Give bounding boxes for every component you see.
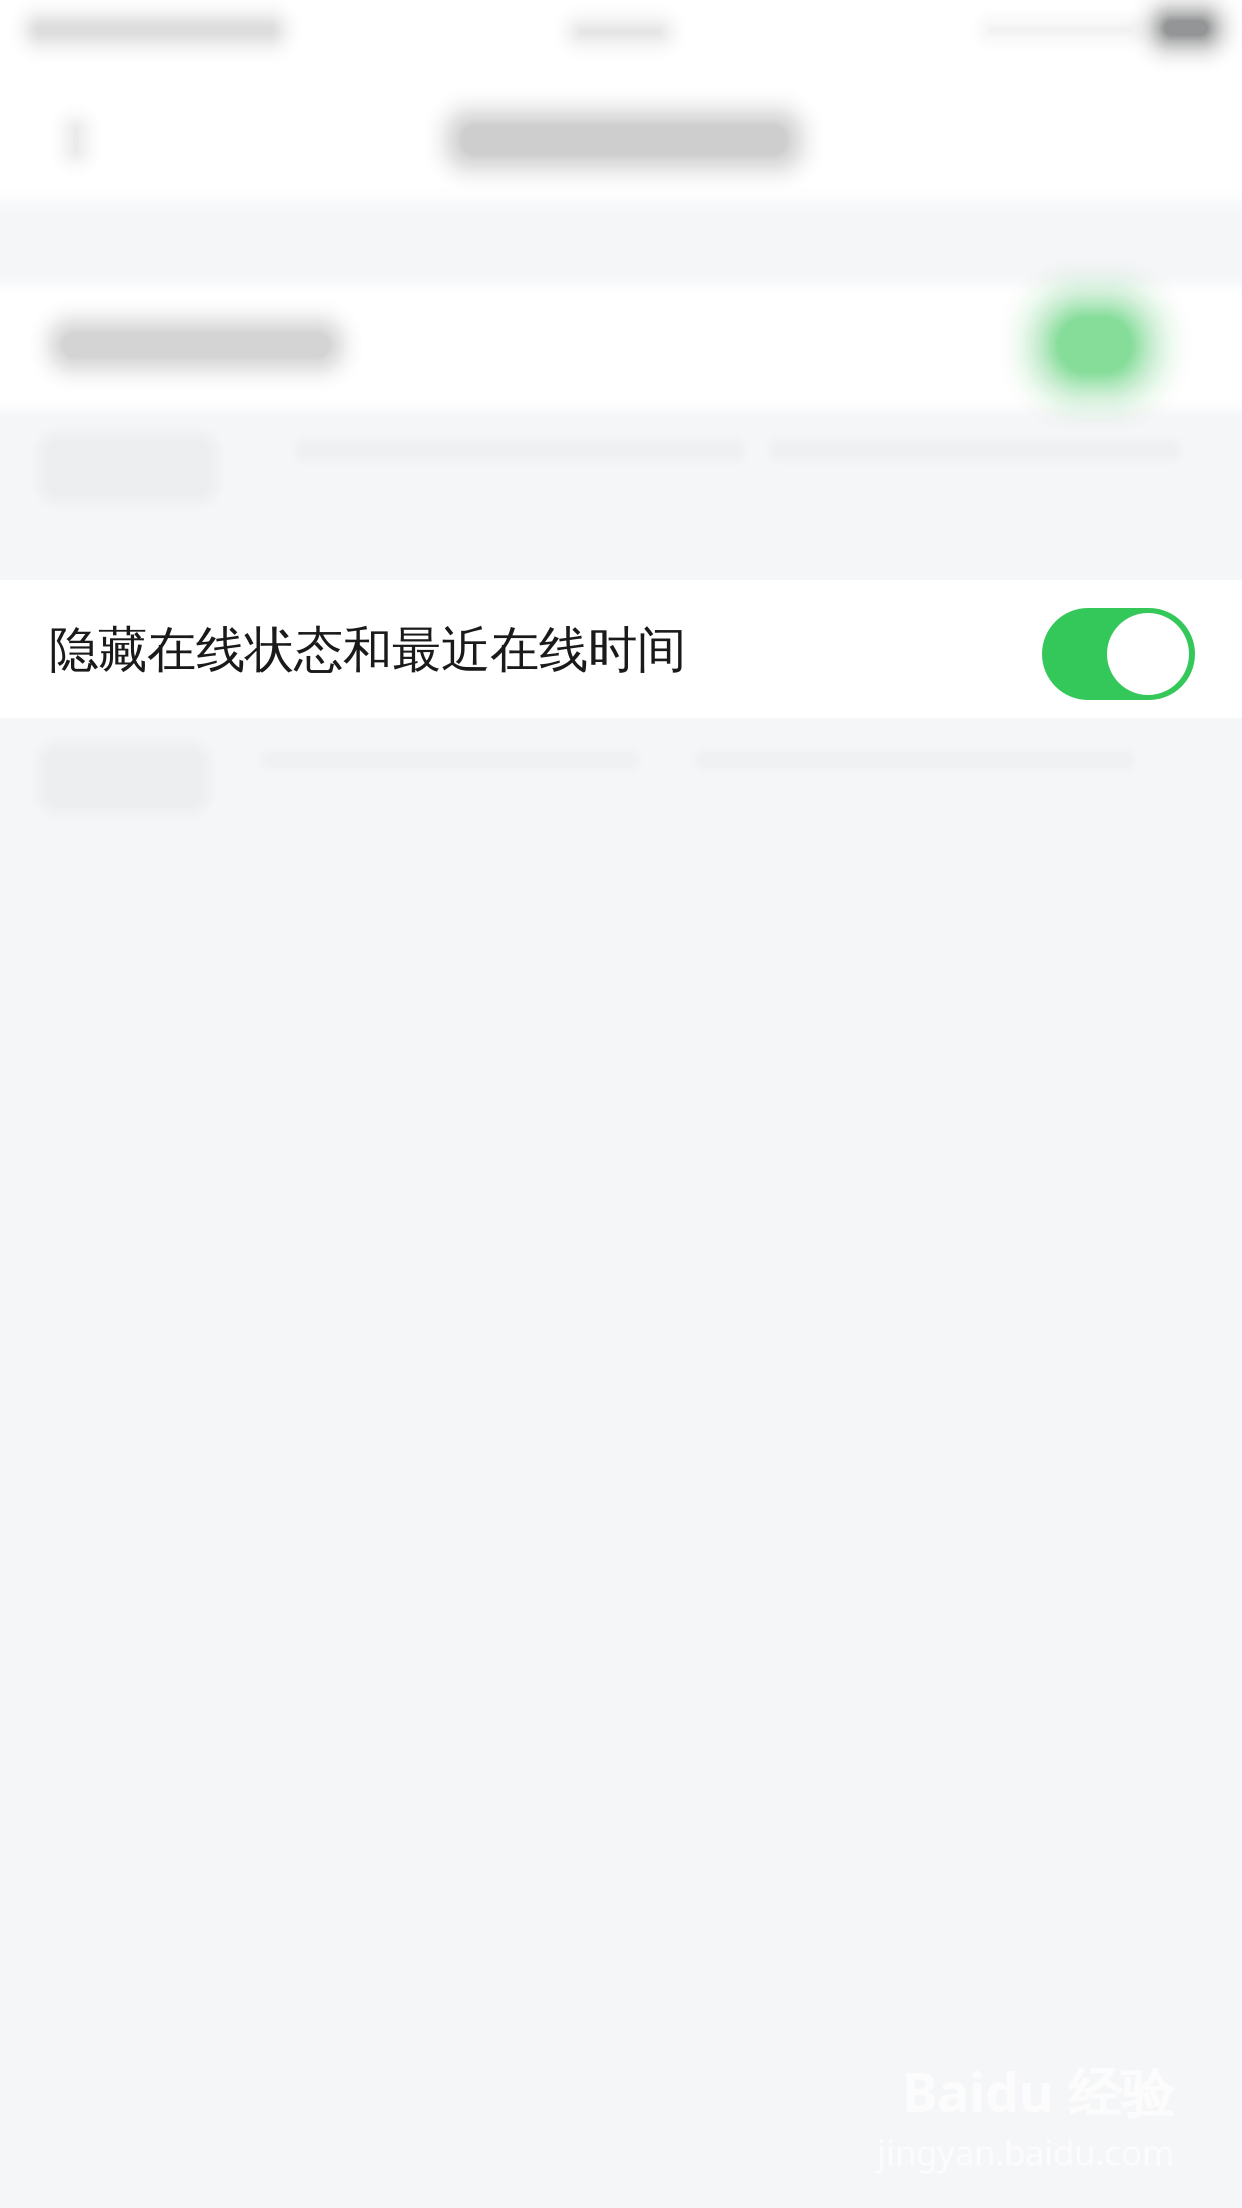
button[interactable]: 隐藏在线状态和最近在线时间	[0, 580, 1242, 718]
staticText: Baidu 经验	[902, 2056, 1174, 2127]
staticText: 隐藏在线状态和最近在线时间	[49, 620, 686, 680]
